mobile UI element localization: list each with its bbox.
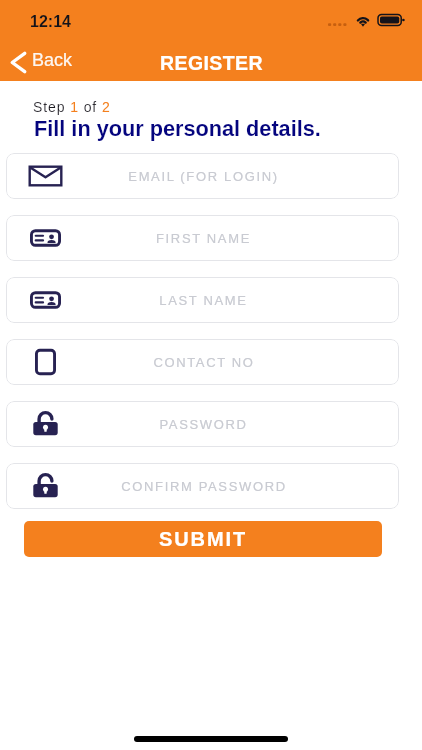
staticText: Step 1 of 2 [33,99,111,115]
staticText: CONFIRM PASSWORD [121,479,287,494]
staticText: FIRST NAME [156,231,251,246]
staticText: REGISTER [160,52,263,74]
staticText: Back [32,50,73,70]
staticText: PASSWORD [159,417,248,432]
button[interactable]: EMAIL (FOR LOGIN) [6,153,399,199]
button[interactable]: CONFIRM PASSWORD [6,463,399,509]
button[interactable]: LAST NAME [6,277,399,323]
staticText: 12:14 [30,13,71,31]
button[interactable]: CONTACT NO [6,339,399,385]
staticText: LAST NAME [159,293,248,308]
button[interactable]: FIRST NAME [6,215,399,261]
button[interactable]: SUBMIT [24,521,382,557]
staticText: CONTACT NO [153,355,255,370]
button[interactable]: Back [0,46,83,76]
staticText: EMAIL (FOR LOGIN) [128,169,279,184]
button[interactable]: PASSWORD [6,401,399,447]
staticText: Fill in your personal details. [34,116,321,140]
staticText: SUBMIT [159,528,248,550]
